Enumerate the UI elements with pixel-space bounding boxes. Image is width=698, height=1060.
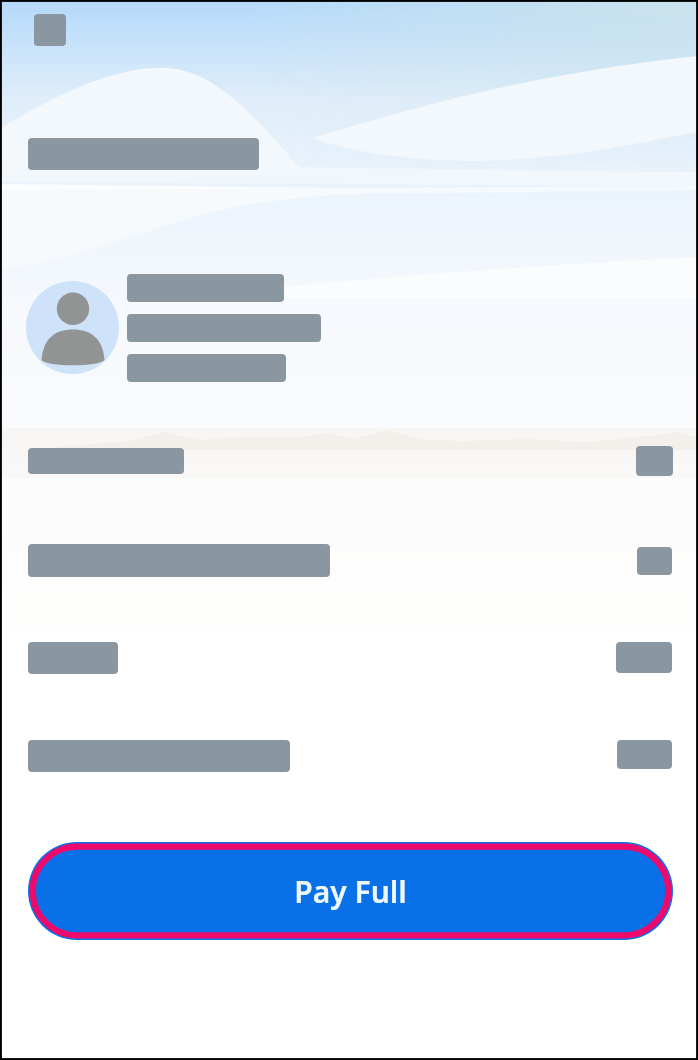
button[interactable]: Pay Full (28, 842, 673, 940)
button[interactable]: Back (34, 14, 66, 46)
staticText: Pay Full (294, 871, 407, 912)
